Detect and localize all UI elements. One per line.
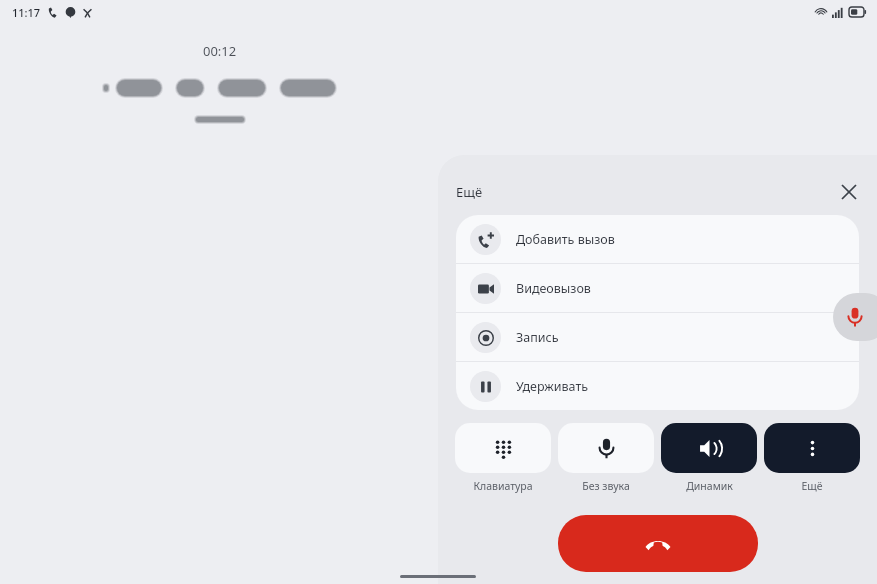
button[interactable]: Завершить вызов — [558, 515, 758, 572]
button[interactable]: Микрофон — [833, 293, 877, 341]
button[interactable]: Закрыть — [833, 176, 865, 208]
button[interactable]: Добавить вызов — [456, 215, 859, 263]
staticText: Клавиатура — [473, 479, 533, 493]
button[interactable]: Запись — [456, 313, 859, 361]
staticText: Ещё — [801, 479, 823, 493]
button[interactable]: Ещё — [764, 423, 860, 473]
button[interactable]: Динамик — [661, 423, 757, 473]
staticText: Без звука — [582, 479, 630, 493]
staticText: Динамик — [686, 479, 733, 493]
button[interactable]: Видеовызов — [456, 264, 859, 312]
staticText: Ещё — [456, 183, 483, 201]
button[interactable]: Клавиатура — [455, 423, 551, 473]
staticText: Запись — [516, 329, 559, 346]
staticText: Удерживать — [516, 378, 589, 395]
button[interactable]: Удерживать — [456, 362, 859, 410]
staticText: 00:12 — [203, 42, 237, 60]
button[interactable]: Без звука — [558, 423, 654, 473]
staticText: Добавить вызов — [516, 231, 615, 248]
staticText: 11:17 — [12, 5, 41, 20]
staticText: Видеовызов — [516, 280, 591, 297]
